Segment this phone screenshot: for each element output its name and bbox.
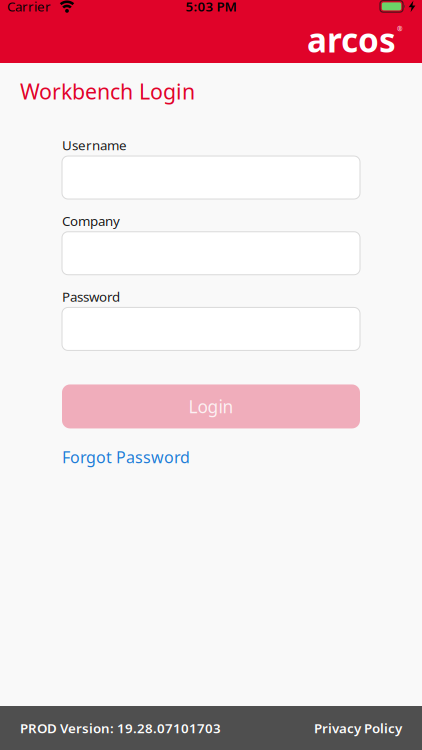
staticText: Username <box>62 136 127 154</box>
staticText: arcos <box>307 17 396 62</box>
button[interactable]: Username text field <box>62 156 360 199</box>
staticText: Privacy Policy <box>314 719 402 737</box>
button[interactable]: Password text field <box>62 307 360 350</box>
button[interactable]: Company text field <box>62 232 360 275</box>
staticText: Password <box>62 288 120 305</box>
button[interactable]: Privacy Policy <box>314 719 402 737</box>
staticText: ® <box>397 24 403 33</box>
button[interactable]: Login <box>62 384 360 428</box>
staticText: Workbench Login <box>20 77 195 105</box>
staticText: 5:03 PM <box>185 0 236 15</box>
staticText: Forgot Password <box>62 446 190 468</box>
staticText: Carrier <box>7 0 51 15</box>
staticText: Login <box>188 395 233 418</box>
button[interactable]: Forgot Password <box>62 446 190 468</box>
staticText: PROD Version: 19.28.07101703 <box>20 719 221 737</box>
staticText: Company <box>62 212 120 230</box>
